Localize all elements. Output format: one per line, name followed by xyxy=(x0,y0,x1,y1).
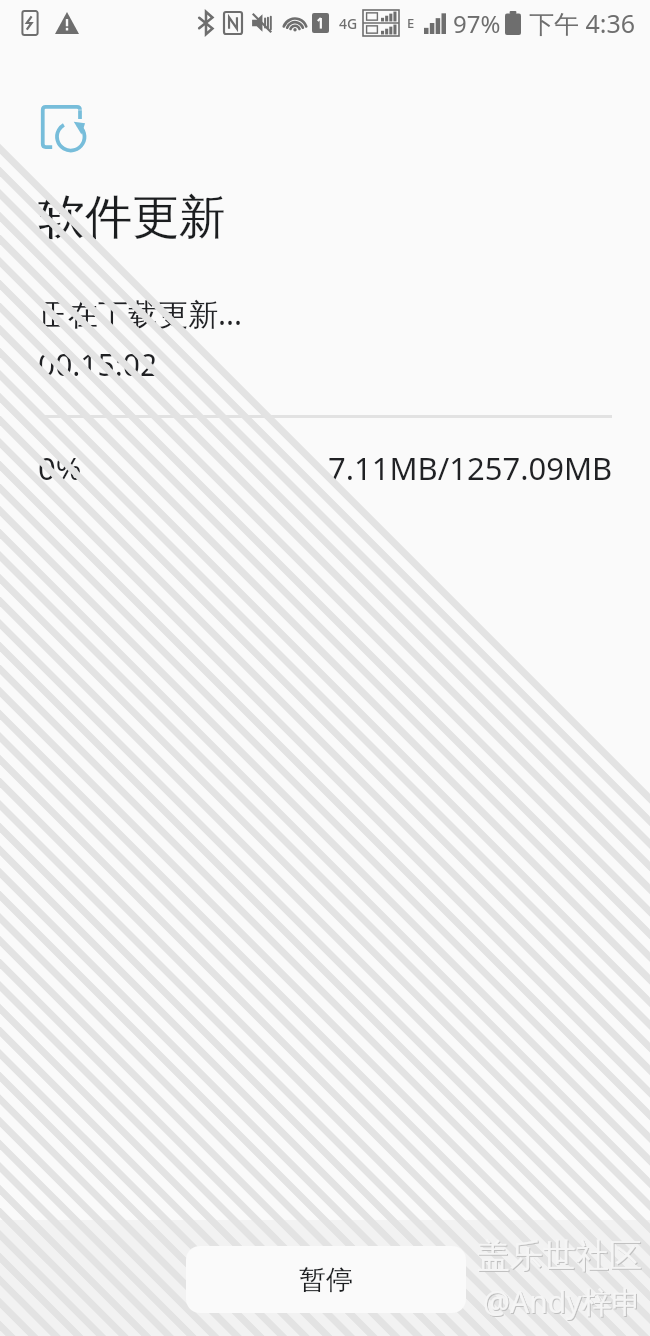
button[interactable]: 暂停 xyxy=(186,1246,466,1313)
staticText: 00:15:02 xyxy=(38,344,158,385)
staticText: 盖乐世社区 xyxy=(477,1235,642,1277)
staticText: @Andy梓申 xyxy=(484,1282,643,1323)
staticText: 下午 4:36 xyxy=(529,6,636,40)
staticText: 暂停 xyxy=(299,1263,353,1297)
staticText: 软件更新 xyxy=(38,188,226,247)
staticText: 97% xyxy=(453,7,501,40)
staticText: E xyxy=(407,14,415,32)
staticText: 正在下载更新... xyxy=(38,293,243,334)
staticText: 4G xyxy=(339,14,358,33)
staticText: 盖乐世社区 xyxy=(478,1236,643,1278)
staticText: 7.11MB/1257.09MB xyxy=(328,447,613,489)
staticText: 0% xyxy=(38,447,82,489)
staticText: @Andy梓申 xyxy=(483,1281,642,1322)
